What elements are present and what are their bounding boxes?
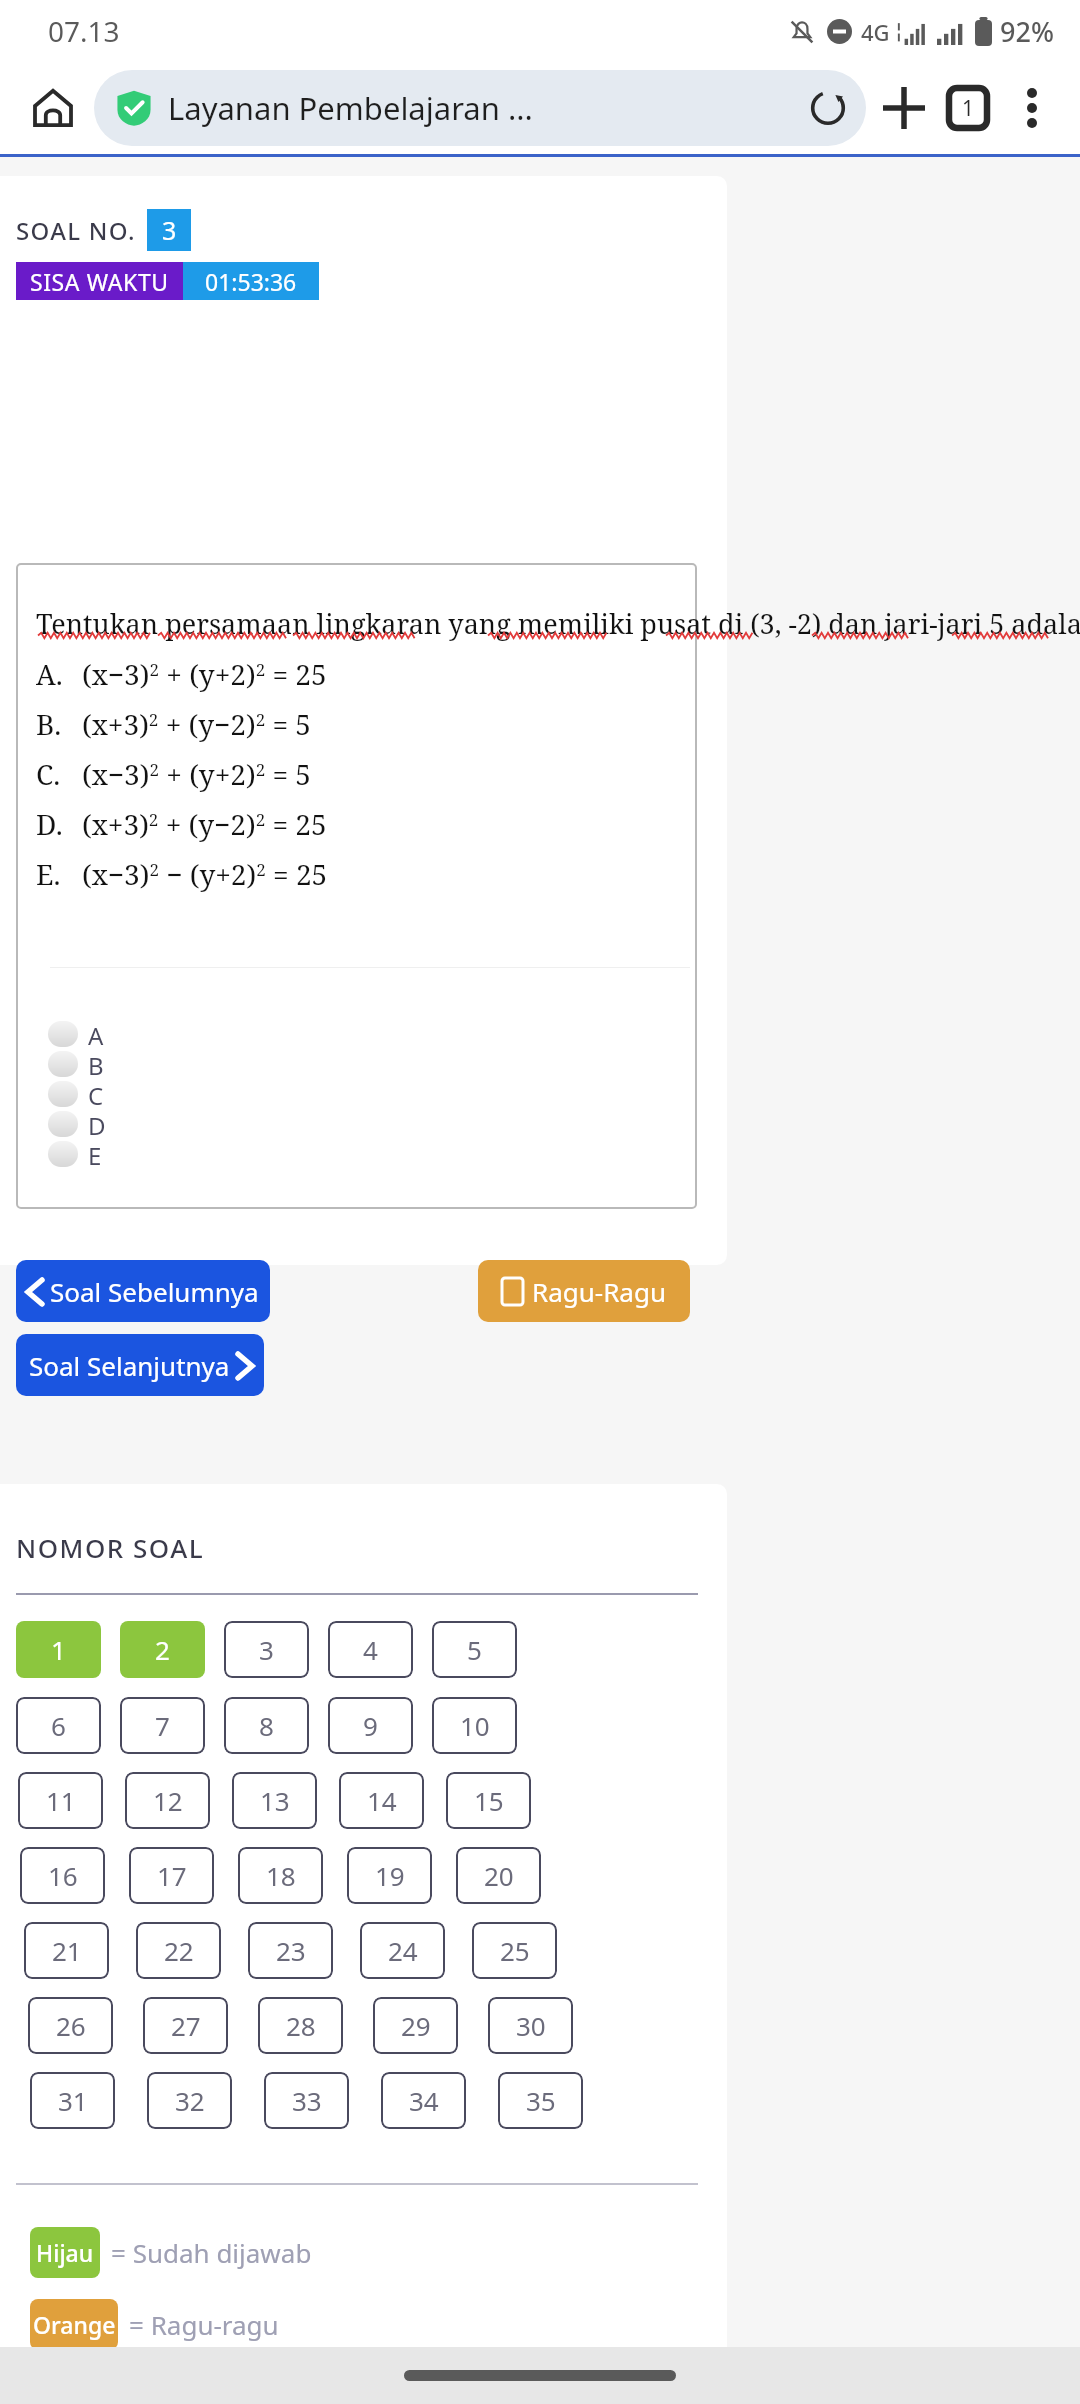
- staticText: C.: [36, 755, 82, 793]
- button[interactable]: 1: [16, 1621, 101, 1678]
- staticText: 34: [409, 2083, 439, 2118]
- button[interactable]: 9: [328, 1697, 413, 1754]
- button[interactable]: 29: [373, 1997, 458, 2054]
- staticText: (x+3)2 + (y−2)2 = 5: [82, 705, 312, 743]
- button[interactable]: 18: [238, 1847, 323, 1904]
- button[interactable]: B: [48, 1049, 104, 1079]
- button[interactable]: 28: [258, 1997, 343, 2054]
- button[interactable]: 35: [498, 2072, 583, 2129]
- staticText: 2: [155, 1632, 170, 1667]
- button[interactable]: 8: [224, 1697, 309, 1754]
- staticText: Hijau: [36, 2237, 94, 2268]
- staticText: 11: [46, 1783, 76, 1818]
- staticText: 5: [467, 1632, 482, 1667]
- staticText: Ragu-Ragu: [532, 1274, 667, 1309]
- staticText: 29: [401, 2008, 431, 2043]
- staticText: A: [88, 1019, 104, 1049]
- staticText: 19: [375, 1858, 405, 1893]
- button[interactable]: E: [48, 1139, 102, 1169]
- button[interactable]: 32: [147, 2072, 232, 2129]
- button[interactable]: 7: [120, 1697, 205, 1754]
- button[interactable]: 17: [129, 1847, 214, 1904]
- button[interactable]: Soal Selanjutnya: [16, 1334, 264, 1396]
- button[interactable]: 4: [328, 1621, 413, 1678]
- staticText: 7: [155, 1708, 170, 1743]
- staticText: 33: [292, 2083, 322, 2118]
- button[interactable]: 2: [120, 1621, 205, 1678]
- staticText: 1: [962, 94, 975, 123]
- staticText: 14: [367, 1783, 397, 1818]
- button[interactable]: 20: [456, 1847, 541, 1904]
- button[interactable]: 33: [264, 2072, 349, 2129]
- button[interactable]: 27: [143, 1997, 228, 2054]
- button[interactable]: Layanan Pembelajaran ...: [94, 70, 866, 146]
- staticText: 32: [175, 2083, 205, 2118]
- staticText: 3: [259, 1632, 274, 1667]
- button[interactable]: 13: [232, 1772, 317, 1829]
- staticText: 07.13: [48, 12, 120, 50]
- staticText: D.: [36, 805, 82, 843]
- staticText: E: [88, 1139, 102, 1169]
- staticText: 1: [51, 1632, 66, 1667]
- staticText: 3: [162, 213, 177, 247]
- button[interactable]: 3: [224, 1621, 309, 1678]
- button[interactable]: 30: [488, 1997, 573, 2054]
- button[interactable]: D: [48, 1109, 106, 1139]
- button[interactable]: New tab: [872, 76, 936, 140]
- staticText: 17: [157, 1858, 187, 1893]
- button[interactable]: 19: [347, 1847, 432, 1904]
- button[interactable]: Ragu-Ragu: [478, 1260, 690, 1322]
- button[interactable]: 15: [446, 1772, 531, 1829]
- button[interactable]: 34: [381, 2072, 466, 2129]
- button[interactable]: Soal Sebelumnya: [16, 1260, 270, 1322]
- staticText: 20: [484, 1858, 514, 1893]
- button[interactable]: Home: [24, 79, 82, 137]
- staticText: 24: [388, 1933, 418, 1968]
- staticText: (x−3)2 + (y+2)2 = 5: [82, 755, 312, 793]
- staticText: = Sudah dijawab: [111, 2235, 312, 2270]
- staticText: 35: [526, 2083, 556, 2118]
- staticText: 23: [276, 1933, 306, 1968]
- button[interactable]: 11: [18, 1772, 103, 1829]
- staticText: 27: [171, 2008, 201, 2043]
- button[interactable]: More options: [1000, 76, 1064, 140]
- button[interactable]: 22: [136, 1922, 221, 1979]
- staticText: 8: [259, 1708, 274, 1743]
- staticText: Layanan Pembelajaran ...: [168, 87, 796, 129]
- button[interactable]: A: [48, 1019, 104, 1049]
- staticText: 22: [164, 1933, 194, 1968]
- button[interactable]: 24: [360, 1922, 445, 1979]
- button[interactable]: 23: [248, 1922, 333, 1979]
- staticText: D: [88, 1109, 106, 1139]
- button[interactable]: Tabs, 1 open: [936, 76, 1000, 140]
- button[interactable]: 21: [24, 1922, 109, 1979]
- button[interactable]: C: [48, 1079, 104, 1109]
- button[interactable]: 6: [16, 1697, 101, 1754]
- staticText: 31: [58, 2083, 88, 2118]
- staticText: (x−3)2 − (y+2)2 = 25: [82, 855, 328, 893]
- button[interactable]: 5: [432, 1621, 517, 1678]
- staticText: Soal Sebelumnya: [50, 1274, 259, 1309]
- staticText: 15: [474, 1783, 504, 1818]
- button[interactable]: Reload: [804, 84, 852, 132]
- button[interactable]: 14: [339, 1772, 424, 1829]
- staticText: 92%: [1000, 13, 1054, 50]
- button[interactable]: 12: [125, 1772, 210, 1829]
- button[interactable]: 26: [28, 1997, 113, 2054]
- button[interactable]: 31: [30, 2072, 115, 2129]
- staticText: E.: [36, 855, 82, 893]
- button[interactable]: 16: [20, 1847, 105, 1904]
- staticText: 9: [363, 1708, 378, 1743]
- staticText: 01:53:36: [205, 266, 297, 297]
- staticText: NOMOR SOAL: [16, 1530, 205, 1565]
- staticText: Soal Selanjutnya: [29, 1348, 230, 1383]
- button[interactable]: 10: [432, 1697, 517, 1754]
- staticText: 30: [516, 2008, 546, 2043]
- staticText: = Ragu-ragu: [129, 2307, 279, 2342]
- staticText: 18: [266, 1858, 296, 1893]
- staticText: 10: [460, 1708, 490, 1743]
- button[interactable]: 25: [472, 1922, 557, 1979]
- staticText: SISA WAKTU: [30, 266, 169, 297]
